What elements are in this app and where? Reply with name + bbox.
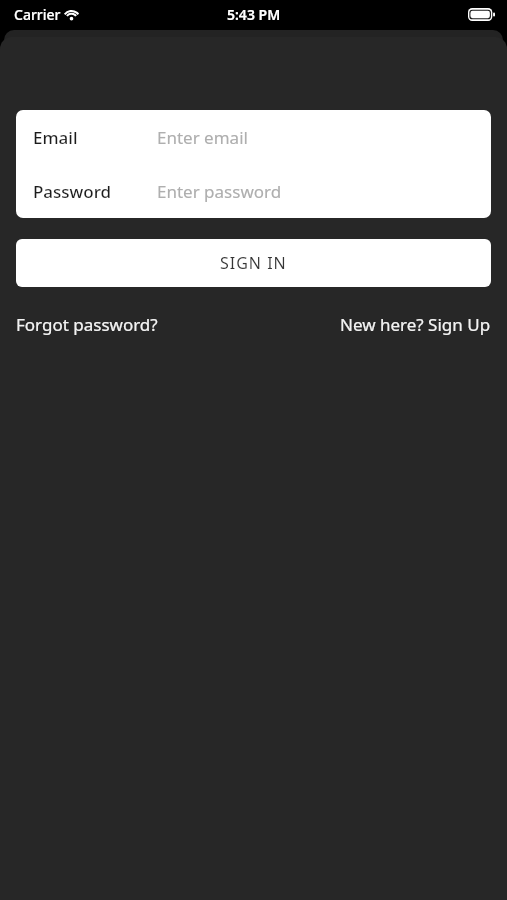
staticText: SIGN IN: [220, 252, 287, 274]
staticText: 5:43 PM: [227, 5, 281, 24]
staticText: Enter password: [157, 180, 282, 203]
staticText: Email: [33, 126, 78, 149]
other: Wi-Fi signal: [63, 8, 80, 21]
other: Battery full: [468, 8, 495, 21]
button[interactable]: Email: [16, 110, 491, 164]
staticText: Enter email: [157, 126, 248, 149]
staticText: Password: [33, 180, 112, 203]
button[interactable]: SIGN IN: [16, 239, 491, 287]
staticText: Forgot password?: [16, 313, 158, 336]
staticText: New here? Sign Up: [340, 313, 491, 336]
button[interactable]: Forgot password?: [16, 309, 158, 340]
staticText: Carrier: [14, 5, 61, 24]
button[interactable]: Password: [16, 164, 491, 218]
button[interactable]: New here? Sign Up: [340, 309, 491, 340]
